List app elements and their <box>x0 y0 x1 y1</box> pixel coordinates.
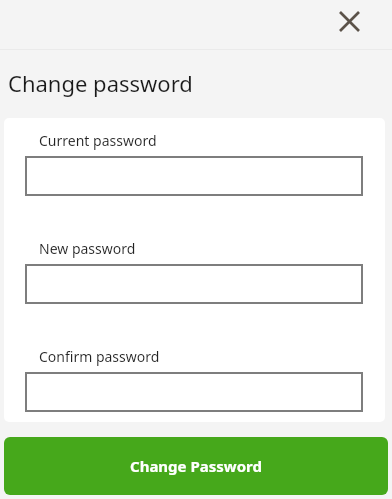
button[interactable] <box>25 372 363 412</box>
button[interactable]: Close <box>331 3 367 39</box>
button[interactable] <box>25 156 363 196</box>
staticText: New password <box>39 239 136 258</box>
staticText: Current password <box>39 131 157 150</box>
staticText: Confirm password <box>39 347 160 366</box>
staticText: Change Password <box>130 456 262 476</box>
staticText: Change password <box>8 68 193 98</box>
button[interactable]: Change Password <box>4 437 388 495</box>
button[interactable] <box>25 264 363 304</box>
